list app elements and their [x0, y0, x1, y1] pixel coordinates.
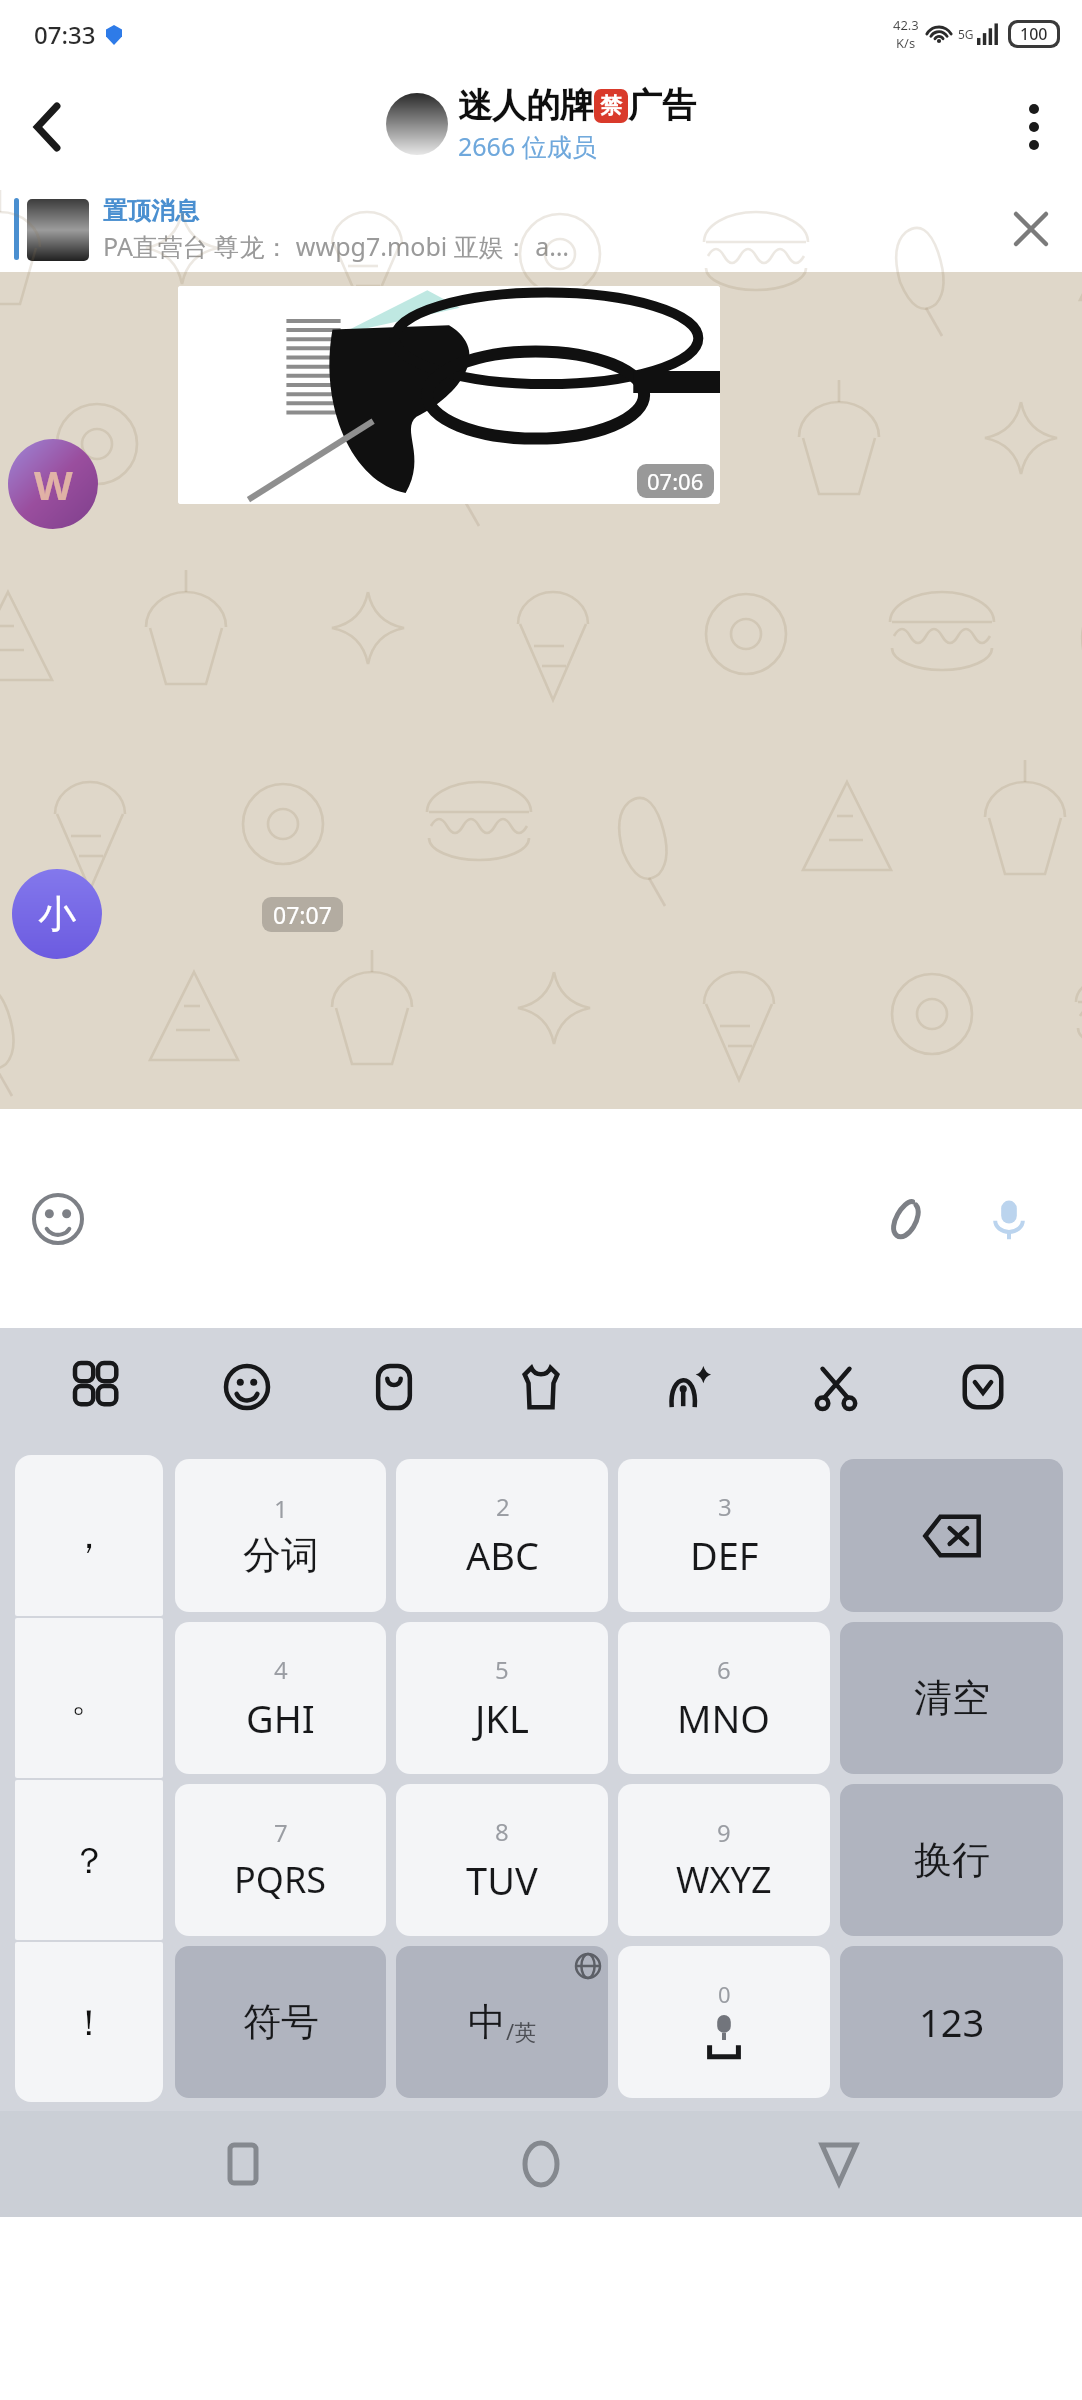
- button[interactable]: Close pinned message: [998, 196, 1064, 262]
- staticText: 4: [274, 1653, 288, 1686]
- staticText: 符号: [243, 1998, 319, 2046]
- button[interactable]: Backspace: [840, 1459, 1063, 1612]
- button[interactable]: 3: [618, 1459, 830, 1612]
- staticText: 5G: [958, 26, 974, 42]
- staticText: 7: [274, 1816, 288, 1849]
- staticText: 42.3: [893, 16, 919, 34]
- button[interactable]: More options: [986, 79, 1082, 175]
- staticText: /英: [506, 2016, 537, 2046]
- button[interactable]: Keyboard layouts: [51, 1339, 147, 1435]
- staticText: 广告: [628, 84, 696, 127]
- button[interactable]: Emoji: [16, 1177, 100, 1261]
- button[interactable]: Space: [618, 1946, 830, 2098]
- staticText: 9: [717, 1816, 731, 1849]
- button[interactable]: 7: [175, 1784, 386, 1936]
- button[interactable]: Voice message: [970, 1180, 1048, 1258]
- button[interactable]: 清空: [840, 1622, 1063, 1774]
- button[interactable]: Recent apps: [188, 2111, 298, 2217]
- staticText: 置顶消息: [103, 196, 199, 226]
- staticText: 8: [495, 1815, 509, 1848]
- button[interactable]: 。: [15, 1618, 163, 1778]
- button[interactable]: Attach file: [862, 1177, 946, 1261]
- button[interactable]: 1: [175, 1459, 386, 1612]
- staticText: 分词: [243, 1531, 319, 1579]
- staticText: W: [34, 457, 73, 511]
- staticText: 换行: [914, 1836, 990, 1884]
- button[interactable]: 6: [618, 1622, 830, 1774]
- staticText: 0: [718, 1979, 731, 2009]
- button[interactable]: Themes: [493, 1339, 589, 1435]
- button[interactable]: ！: [15, 1942, 163, 2102]
- button[interactable]: Cut: [788, 1339, 884, 1435]
- staticText: 禁: [600, 92, 622, 120]
- button[interactable]: 换行: [840, 1784, 1063, 1936]
- staticText: TUV: [466, 1854, 538, 1906]
- staticText: 07:07: [273, 899, 332, 930]
- staticText: 07:06: [647, 466, 704, 496]
- staticText: 5: [495, 1653, 509, 1686]
- button[interactable]: 5: [396, 1622, 608, 1774]
- button[interactable]: 符号: [175, 1946, 386, 2098]
- staticText: 迷人的牌: [458, 84, 594, 127]
- staticText: 6: [717, 1653, 731, 1686]
- button[interactable]: Home: [486, 2111, 596, 2217]
- staticText: DEF: [690, 1529, 759, 1581]
- button[interactable]: 8: [396, 1784, 608, 1936]
- button[interactable]: 中: [396, 1946, 608, 2098]
- button[interactable]: Video message: [178, 286, 720, 504]
- button[interactable]: 2: [396, 1459, 608, 1612]
- staticText: 清空: [914, 1674, 990, 1722]
- button[interactable]: 4: [175, 1622, 386, 1774]
- button[interactable]: ？: [15, 1780, 163, 1940]
- button[interactable]: 置顶消息: [0, 186, 1082, 272]
- staticText: ？: [71, 1838, 107, 1883]
- staticText: 2666 位成员: [458, 129, 597, 163]
- staticText: 小: [38, 890, 76, 938]
- button[interactable]: Back: [0, 79, 96, 175]
- staticText: PQRS: [234, 1855, 327, 1904]
- staticText: 123: [919, 1996, 985, 2048]
- staticText: GHI: [246, 1692, 315, 1744]
- button[interactable]: Back: [784, 2111, 894, 2217]
- staticText: PA直营台 尊龙： wwpg7.mobi 亚娱： a…: [103, 229, 570, 263]
- staticText: 07:33: [34, 18, 96, 51]
- staticText: ABC: [466, 1529, 539, 1581]
- button[interactable]: Emoji: [199, 1339, 295, 1435]
- staticText: 中: [468, 1998, 506, 2046]
- staticText: ，: [71, 1513, 107, 1558]
- button[interactable]: Clipboard: [346, 1339, 442, 1435]
- staticText: 3: [718, 1490, 732, 1523]
- staticText: JKL: [475, 1692, 529, 1744]
- button[interactable]: Hide keyboard: [935, 1339, 1031, 1435]
- button[interactable]: 123: [840, 1946, 1063, 2098]
- button[interactable]: Sender avatar: [12, 869, 102, 959]
- staticText: ！: [71, 2000, 107, 2045]
- button[interactable]: Sender avatar: [8, 439, 98, 529]
- staticText: 1: [274, 1492, 288, 1525]
- staticText: 。: [71, 1676, 107, 1721]
- button[interactable]: ，: [15, 1455, 163, 1616]
- staticText: WXYZ: [676, 1855, 772, 1904]
- button[interactable]: 9: [618, 1784, 830, 1936]
- button[interactable]: AI assistant: [640, 1339, 736, 1435]
- staticText: 100: [1020, 23, 1048, 45]
- staticText: MNO: [677, 1692, 771, 1744]
- staticText: 2: [496, 1490, 510, 1523]
- staticText: K/s: [896, 34, 916, 52]
